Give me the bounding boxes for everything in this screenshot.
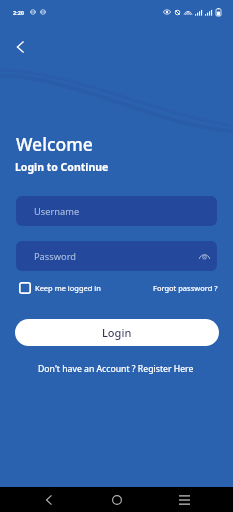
staticText: 2:20 (13, 9, 24, 16)
staticText: Login (102, 325, 132, 340)
button[interactable]: Home (105, 487, 129, 512)
button[interactable]: Password (16, 241, 217, 271)
button[interactable]: Keep me logged in (19, 282, 101, 294)
staticText: Password (34, 250, 77, 263)
button[interactable]: Don't have an Account ? Register Here (38, 363, 194, 375)
staticText: Username (34, 205, 80, 218)
button[interactable]: Recent apps (172, 487, 196, 512)
button[interactable]: Back (8, 35, 32, 59)
button[interactable]: Login (15, 319, 219, 346)
button[interactable]: Show password (199, 252, 210, 260)
button[interactable]: Back (37, 487, 61, 512)
staticText: Keep me logged in (35, 283, 101, 293)
staticText: Login to Continue (15, 160, 109, 174)
button[interactable]: Forgot password ? (153, 283, 218, 293)
staticText: Welcome (16, 132, 93, 156)
button[interactable]: Username (16, 196, 217, 226)
